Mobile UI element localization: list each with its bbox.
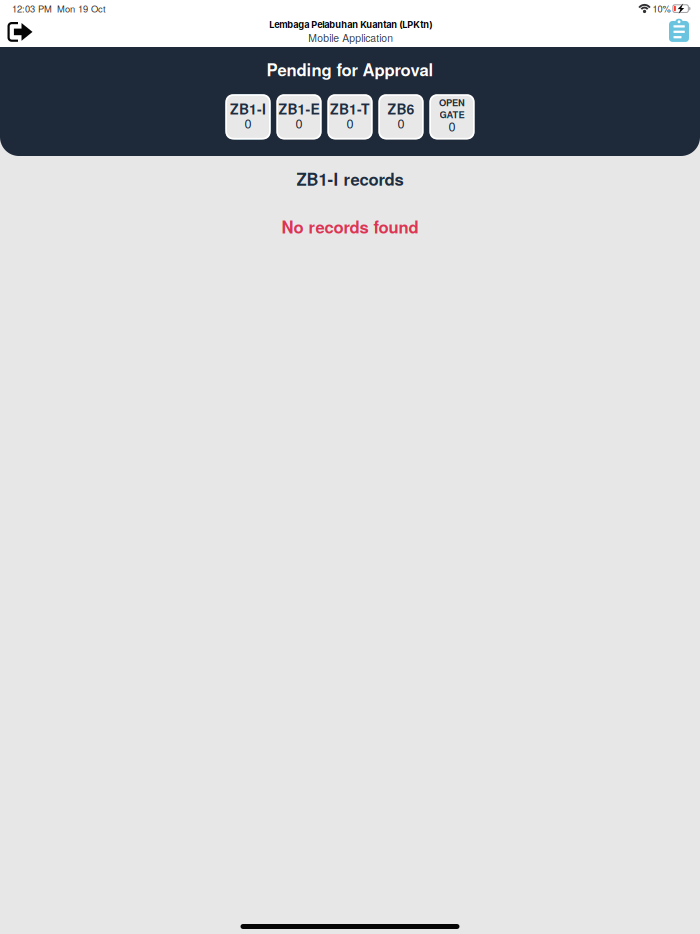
staticText: OPEN: [439, 96, 465, 109]
button[interactable]: ZB1-T: [327, 94, 372, 139]
button[interactable]: Log out: [0, 18, 42, 44]
staticText: GATE: [439, 108, 464, 121]
staticText: 10%: [652, 2, 670, 15]
staticText: Pending for Approval: [266, 57, 433, 81]
staticText: Mon 19 Oct: [57, 2, 106, 15]
staticText: ZB1-I records: [296, 167, 403, 191]
staticText: 0: [397, 114, 404, 132]
staticText: Lembaga Pelabuhan Kuantan (LPKtn): [269, 19, 432, 30]
staticText: 0: [295, 114, 302, 132]
staticText: ZB1-I: [230, 99, 266, 119]
staticText: 0: [448, 117, 455, 135]
button[interactable]: OPEN: [429, 94, 474, 139]
staticText: ZB1-E: [278, 99, 319, 119]
button[interactable]: ZB1-I: [225, 94, 270, 139]
button[interactable]: Records: [659, 18, 700, 45]
button[interactable]: ZB6: [378, 94, 423, 139]
staticText: 12:03 PM: [12, 2, 52, 15]
staticText: ZB6: [387, 99, 414, 119]
staticText: No records found: [281, 215, 418, 239]
staticText: 0: [346, 114, 353, 132]
button[interactable]: ZB1-E: [276, 94, 321, 139]
staticText: Mobile Application: [308, 30, 393, 45]
staticText: ZB1-T: [330, 99, 370, 119]
staticText: 0: [244, 114, 251, 132]
